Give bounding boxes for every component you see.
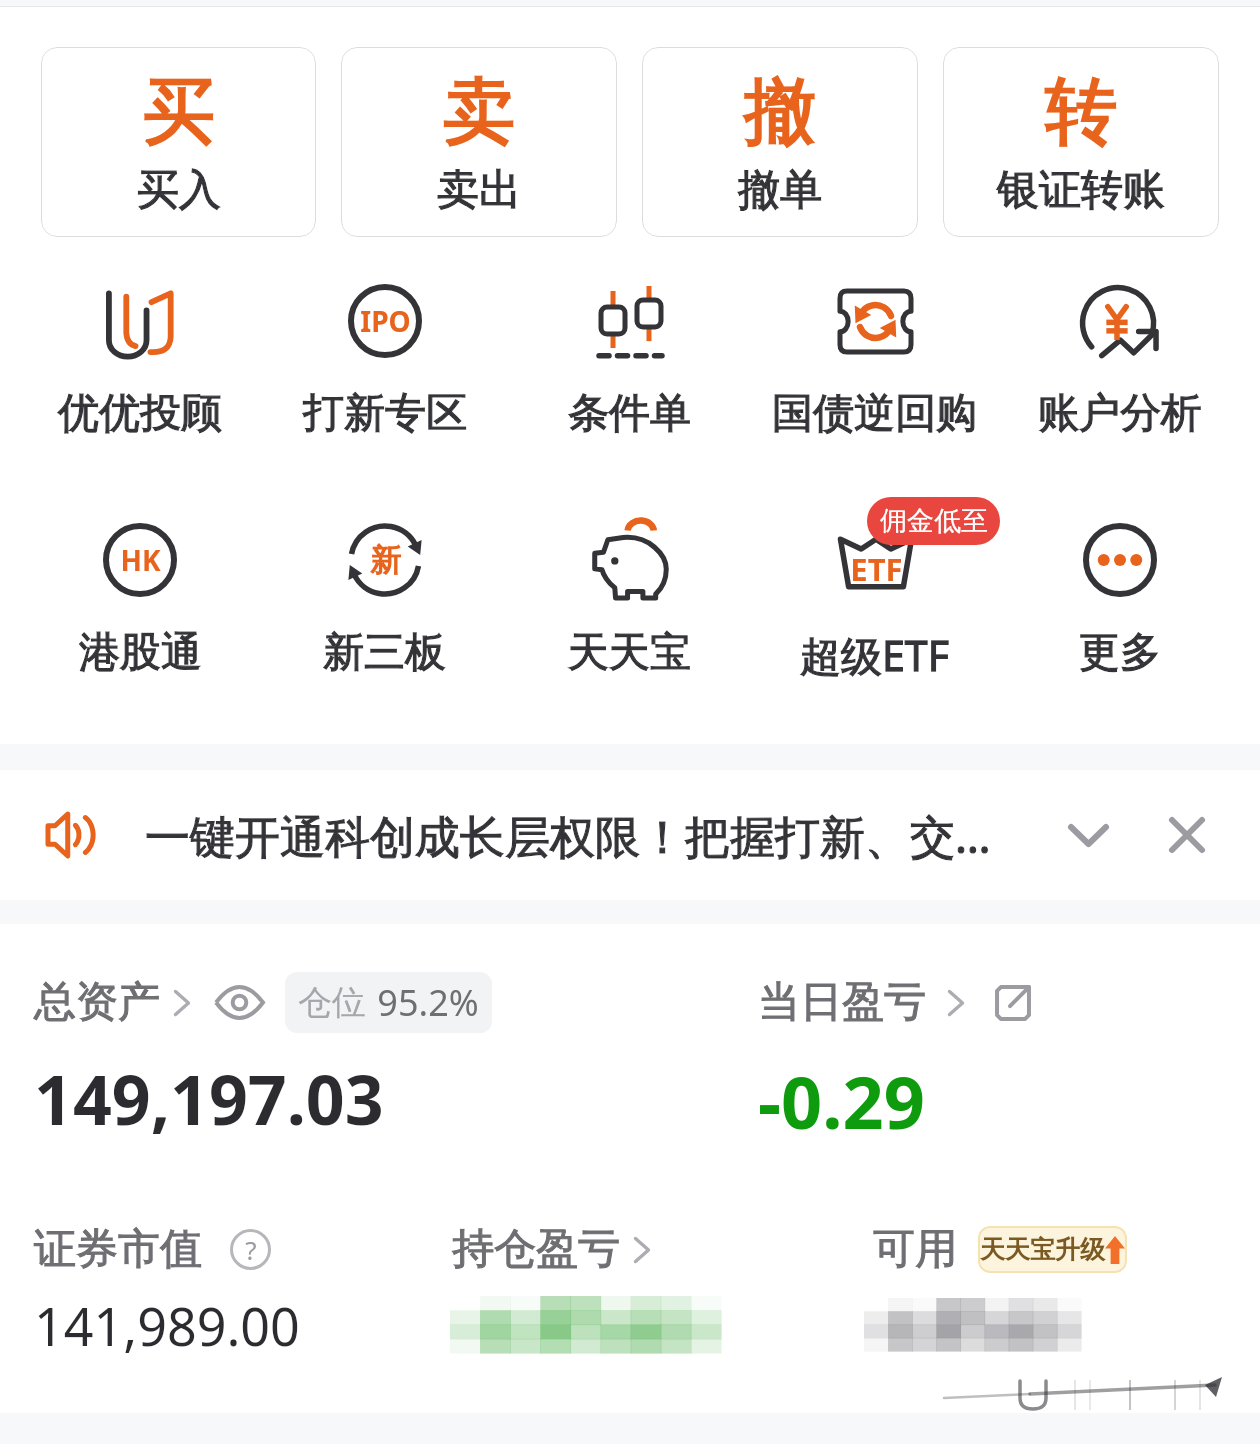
staticText: 优优投顾 xyxy=(58,388,222,440)
staticText: 95.2% xyxy=(377,978,479,1027)
staticText: 打新专区 xyxy=(303,388,467,440)
staticText: 新三板 xyxy=(323,627,446,679)
staticText: IPO xyxy=(360,302,411,340)
staticText: 银证转账 xyxy=(997,164,1165,217)
button[interactable]: 证券市值 xyxy=(34,1223,418,1361)
staticText: -0.29 xyxy=(758,1052,925,1150)
staticText: 卖出 xyxy=(437,164,521,217)
staticText: 撤单 xyxy=(738,164,822,217)
button[interactable]: 当日盈亏 xyxy=(758,972,1260,1150)
staticText: 更多 xyxy=(1079,627,1161,679)
staticText: 转 xyxy=(1045,67,1117,158)
staticText: 更多 xyxy=(1079,627,1161,679)
button[interactable]: 新 xyxy=(262,520,507,679)
button[interactable]: 可用 xyxy=(839,1223,1260,1351)
staticText: 打新专区 xyxy=(303,388,467,440)
staticText: 证券市值 xyxy=(34,1223,202,1276)
button[interactable]: HK xyxy=(18,520,262,679)
button[interactable]: 国债逆回购 xyxy=(752,281,997,440)
staticText: 银证转账 xyxy=(997,164,1165,217)
staticText: 国债逆回购 xyxy=(772,388,977,440)
button[interactable]: 天天宝 xyxy=(507,520,752,679)
button[interactable]: Expand xyxy=(1048,795,1128,875)
staticText: 超级ETF xyxy=(800,627,949,683)
button[interactable]: IPO xyxy=(262,281,507,440)
staticText: 天天宝 xyxy=(568,627,691,679)
staticText: 新三板 xyxy=(323,627,446,679)
button[interactable]: 一键开通科创成长层权限！把握打新、交… xyxy=(0,770,1260,900)
staticText: 卖出 xyxy=(437,164,521,217)
staticText: 天天宝 xyxy=(568,627,691,679)
staticText: 撤 xyxy=(744,67,816,158)
staticText: 卖 xyxy=(443,67,515,158)
staticText: 证券市值 xyxy=(34,1223,202,1276)
staticText: 总资产 xyxy=(34,976,160,1029)
button[interactable]: 卖 xyxy=(341,47,617,237)
staticText: 条件单 xyxy=(568,388,691,440)
staticText: 一键开通科创成长层权限！把握打新、交… xyxy=(145,805,991,866)
staticText: 优优投顾 xyxy=(58,388,222,440)
button[interactable]: 天天宝升级 xyxy=(978,1226,1127,1273)
button[interactable]: 持仓盈亏 xyxy=(418,1223,839,1353)
staticText: 账户分析 xyxy=(1038,388,1202,440)
staticText: ? xyxy=(245,1232,257,1267)
staticText: 买入 xyxy=(137,164,221,217)
staticText: 港股通 xyxy=(79,627,202,679)
button[interactable]: 买 xyxy=(41,47,316,237)
staticText: 持仓盈亏 xyxy=(452,1223,620,1276)
staticText: 超级ETF xyxy=(800,627,949,683)
button[interactable]: Close xyxy=(1151,799,1223,871)
staticText: 当日盈亏 xyxy=(758,976,926,1029)
button[interactable]: 账户分析 xyxy=(997,281,1242,440)
button[interactable]: 优优投顾 xyxy=(18,281,262,440)
staticText: 可用 xyxy=(873,1223,957,1276)
staticText: 买入 xyxy=(137,164,221,217)
button[interactable]: ETF xyxy=(752,520,997,683)
staticText: 141,989.00 xyxy=(34,1290,300,1361)
staticText: 账户分析 xyxy=(1038,388,1202,440)
button[interactable]: 总资产 xyxy=(34,972,724,1145)
staticText: ETF xyxy=(850,548,903,590)
button[interactable]: 撤 xyxy=(642,47,918,237)
staticText: 条件单 xyxy=(568,388,691,440)
staticText: 港股通 xyxy=(79,627,202,679)
staticText: 卖 xyxy=(443,67,515,158)
button[interactable]: 仓位 xyxy=(285,972,492,1033)
staticText: 一键开通科创成长层权限！把握打新、交… xyxy=(145,805,991,866)
staticText: 新 xyxy=(370,541,401,580)
staticText: 买 xyxy=(143,67,215,158)
staticText: 转 xyxy=(1045,67,1117,158)
staticText: 总资产 xyxy=(34,976,160,1029)
button[interactable]: 转 xyxy=(943,47,1219,237)
staticText: HK xyxy=(120,541,161,579)
staticText: 国债逆回购 xyxy=(772,388,977,440)
button[interactable]: 更多 xyxy=(997,520,1242,679)
button[interactable]: 条件单 xyxy=(507,281,752,440)
staticText: 持仓盈亏 xyxy=(452,1223,620,1276)
staticText: 买 xyxy=(143,67,215,158)
staticText: 撤 xyxy=(744,67,816,158)
staticText: 149,197.03 xyxy=(34,1052,384,1145)
staticText: 佣金低至 xyxy=(880,504,988,538)
staticText: 天天宝升级 xyxy=(980,1234,1105,1265)
staticText: 撤单 xyxy=(738,164,822,217)
staticText: 仓位 xyxy=(298,981,366,1024)
staticText: 当日盈亏 xyxy=(758,976,926,1029)
staticText: 可用 xyxy=(873,1223,957,1276)
